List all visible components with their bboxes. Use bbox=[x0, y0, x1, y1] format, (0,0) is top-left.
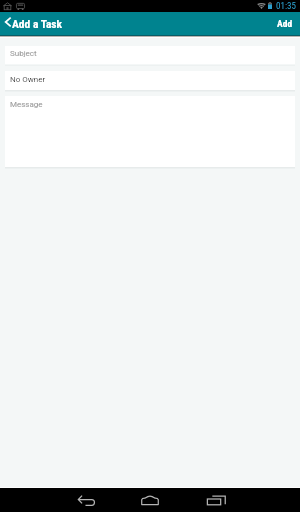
staticText: 01:35 bbox=[276, 1, 296, 12]
button[interactable]: Home bbox=[128, 488, 172, 512]
button[interactable]: Recent apps bbox=[194, 488, 238, 512]
button[interactable]: Add bbox=[269, 13, 300, 34]
staticText: Add bbox=[277, 18, 293, 29]
button[interactable]: Subject bbox=[5, 46, 295, 64]
button[interactable]: Add a Task bbox=[0, 17, 71, 30]
staticText: Subject bbox=[10, 49, 37, 58]
button[interactable]: No Owner bbox=[5, 71, 295, 90]
staticText: Message bbox=[10, 100, 43, 109]
staticText: Add a Task bbox=[12, 17, 63, 30]
staticText: No Owner bbox=[10, 75, 46, 84]
button[interactable]: Back bbox=[64, 488, 108, 512]
button[interactable]: Message bbox=[5, 96, 295, 167]
